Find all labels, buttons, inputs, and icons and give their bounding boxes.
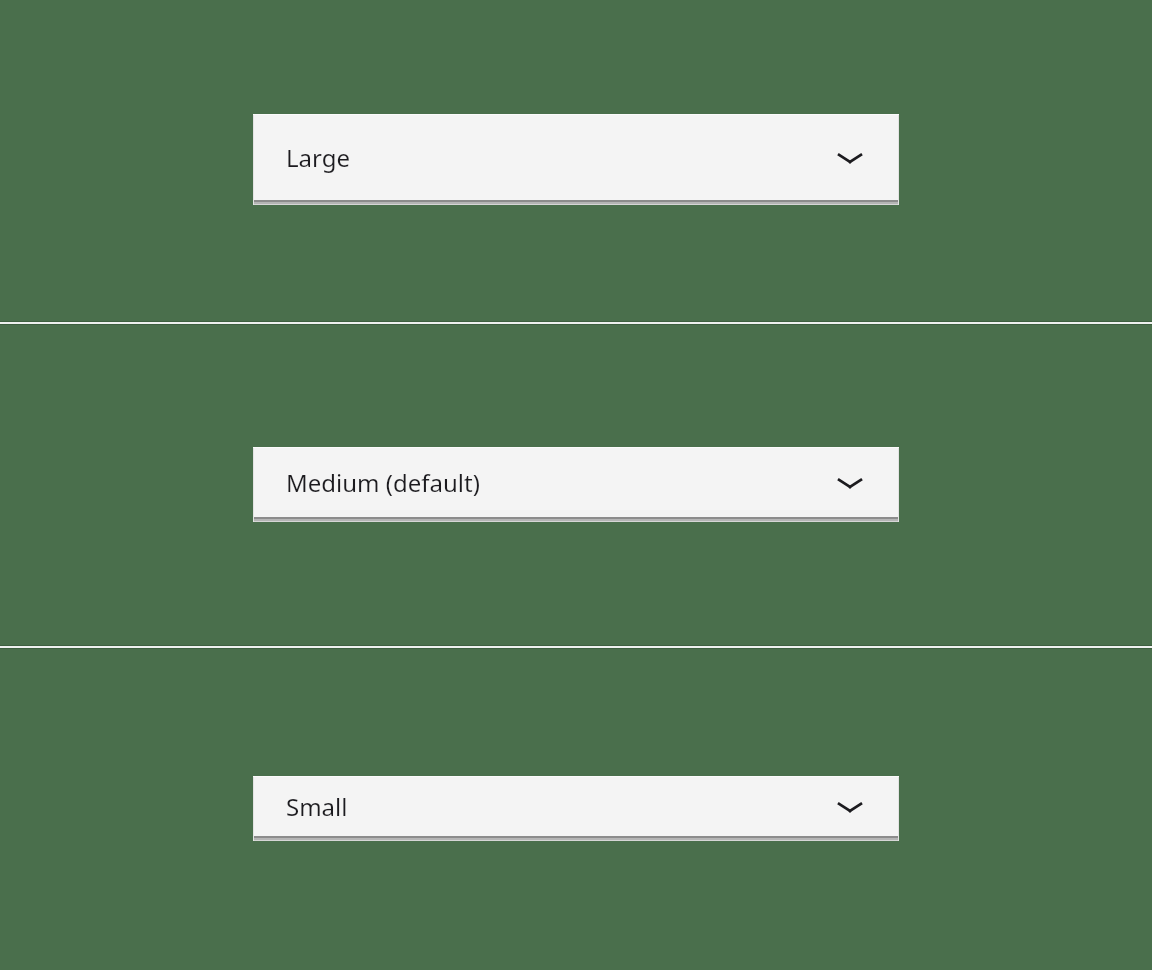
button[interactable]: Small — [254, 777, 898, 836]
button[interactable]: Medium (default) — [254, 448, 898, 517]
staticText: Medium (default) — [286, 466, 480, 499]
other: Expand Large — [837, 148, 863, 168]
other: Expand Medium (default) — [837, 473, 863, 493]
staticText: Small — [286, 790, 348, 823]
other: Expand Small — [837, 797, 863, 817]
button[interactable]: Large — [254, 115, 898, 200]
staticText: Large — [286, 141, 351, 174]
